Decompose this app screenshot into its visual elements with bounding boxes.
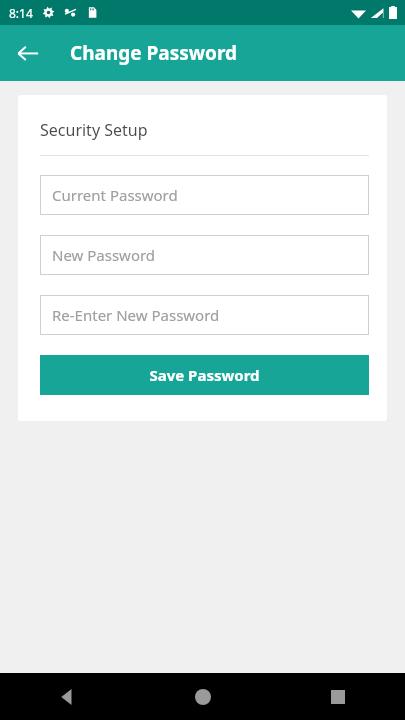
- button[interactable]: Back: [0, 673, 135, 720]
- button[interactable]: New Password: [40, 235, 369, 275]
- staticText: Save Password: [149, 365, 260, 385]
- staticText: Change Password: [70, 40, 238, 66]
- button[interactable]: Current Password: [40, 175, 369, 215]
- staticText: New Password: [52, 245, 156, 265]
- staticText: 8:14: [9, 5, 33, 21]
- button[interactable]: Save Password: [40, 355, 369, 395]
- staticText: Re-Enter New Password: [52, 305, 220, 325]
- button[interactable]: Re-Enter New Password: [40, 295, 369, 335]
- staticText: Current Password: [52, 185, 178, 205]
- button[interactable]: Back: [6, 31, 50, 75]
- button[interactable]: Recent apps: [270, 673, 405, 720]
- staticText: Security Setup: [40, 119, 148, 141]
- button[interactable]: Home: [135, 673, 270, 720]
